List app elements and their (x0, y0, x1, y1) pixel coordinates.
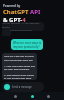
staticText: What are some ways to improve productivi… (13, 41, 42, 49)
staticText: Powered by (3, 4, 21, 8)
staticText: Send a message (12, 85, 32, 89)
button[interactable]: Settings (47, 95, 50, 98)
button[interactable]: Chat (31, 95, 34, 98)
button[interactable]: Ask me anything — I can help with writin… (2, 22, 44, 31)
staticText: Ask me anything — I can help with writin… (2, 22, 44, 31)
button[interactable] (2, 82, 44, 92)
staticText: Here are a few tips to boost your produc… (4, 55, 35, 79)
staticText: & GPT-4 (3, 16, 26, 24)
button[interactable]: Voice (4, 84, 10, 90)
button[interactable]: Home (14, 95, 17, 98)
staticText: ChatGPT API (3, 8, 41, 16)
button[interactable]: What are some ways to improve productivi… (11, 39, 43, 50)
button[interactable]: Here are a few tips to boost your produc… (2, 53, 37, 80)
